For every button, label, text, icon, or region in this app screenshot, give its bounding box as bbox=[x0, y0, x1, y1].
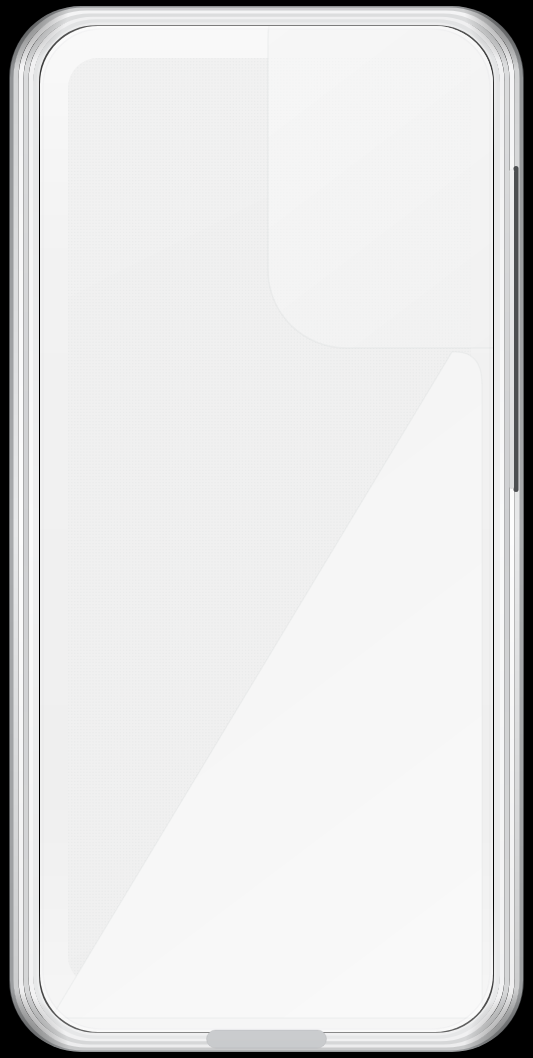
button[interactable]: Transparent phone case product photo bbox=[0, 0, 533, 1058]
